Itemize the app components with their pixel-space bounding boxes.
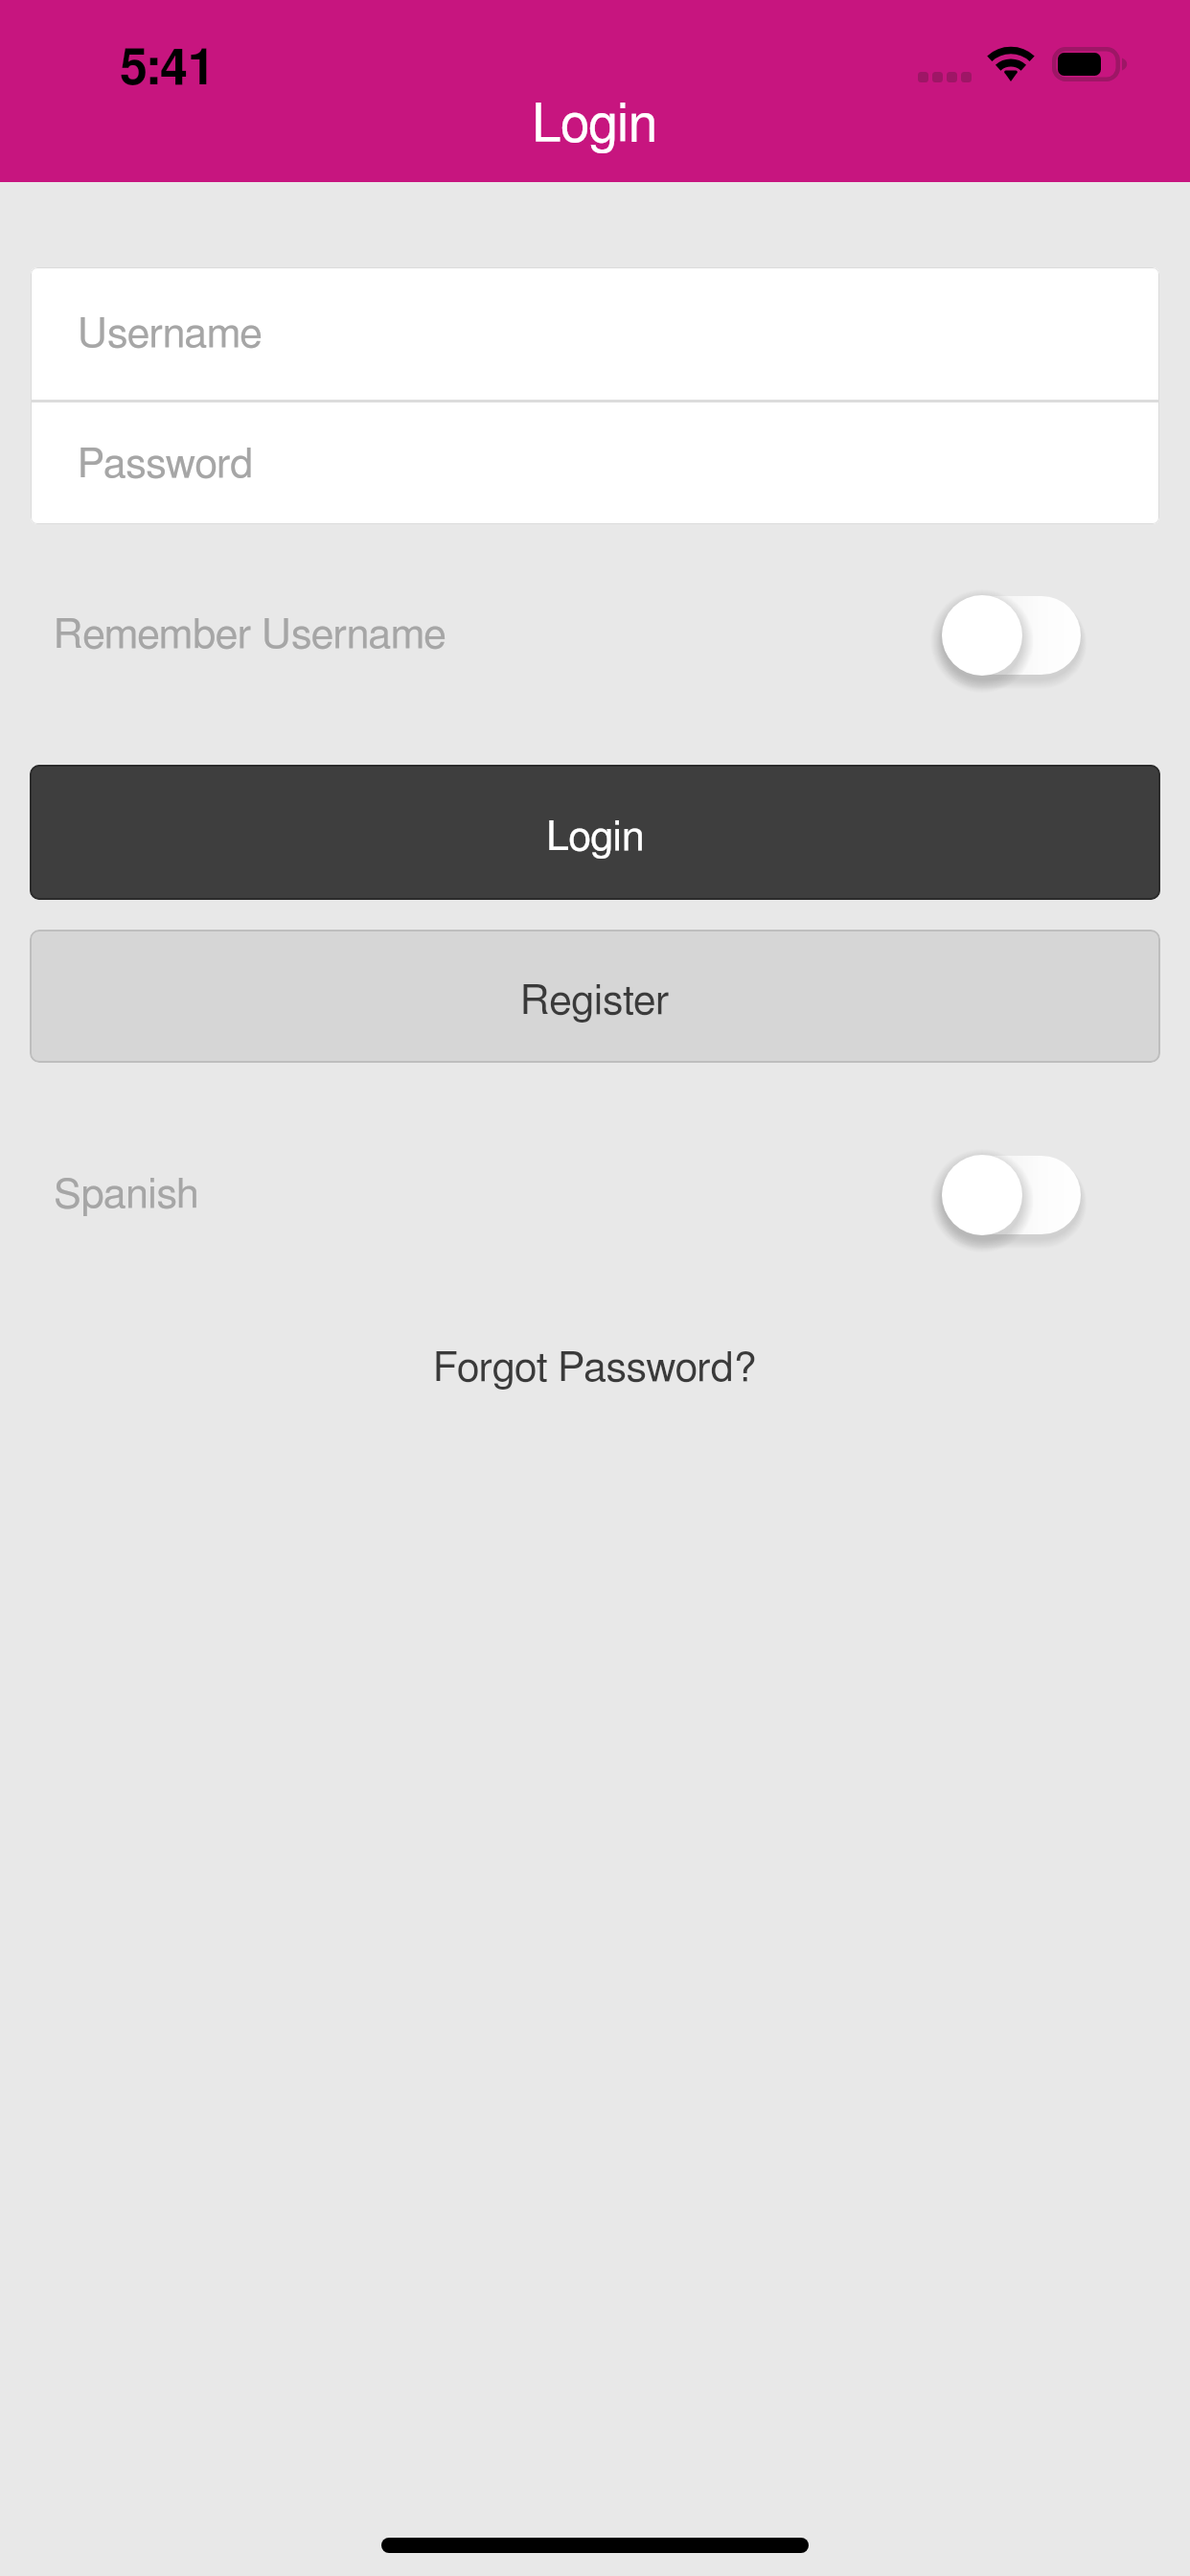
button[interactable]: Toggle Spanish [943, 1149, 1087, 1241]
staticText: Spanish [54, 1175, 199, 1216]
staticText: Password [78, 445, 254, 486]
staticText: Register [520, 981, 670, 1023]
button[interactable]: Toggle Remember Username [943, 589, 1087, 681]
staticText: Login [532, 100, 657, 152]
button[interactable]: Login [30, 765, 1160, 900]
button[interactable]: Username [31, 267, 1159, 400]
button[interactable]: Forgot Password? [410, 1337, 780, 1401]
staticText: Username [78, 314, 263, 356]
button[interactable]: Register [30, 930, 1160, 1063]
button[interactable]: Password [31, 402, 1159, 524]
staticText: Forgot Password? [433, 1348, 757, 1390]
staticText: Login [546, 817, 645, 859]
staticText: Remember Username [54, 615, 446, 656]
staticText: 5:41 [120, 44, 216, 94]
